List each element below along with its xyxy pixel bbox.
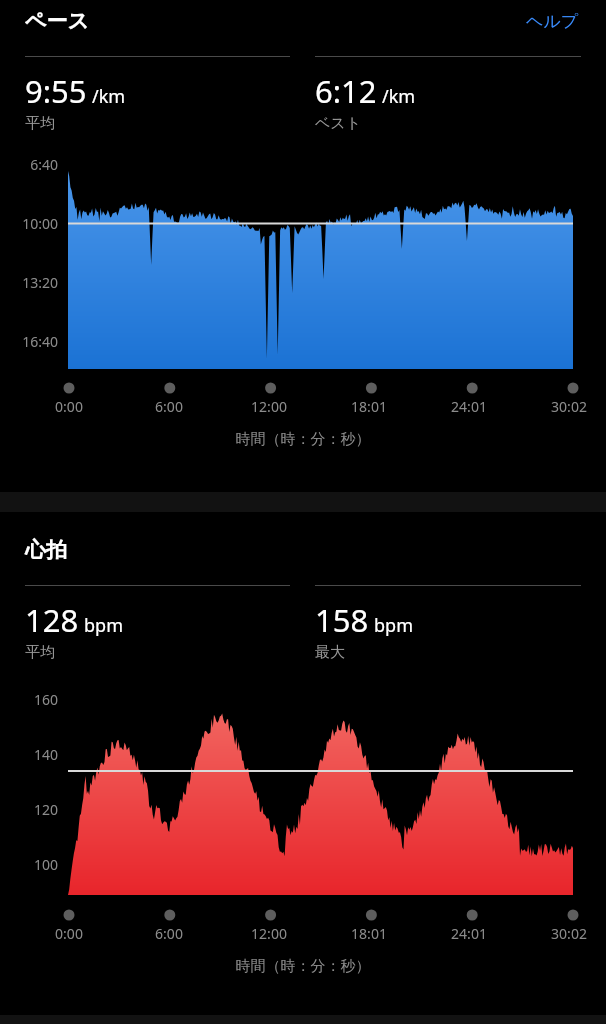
staticText: 16:40 <box>0 332 58 351</box>
staticText: 6:12 <box>315 70 377 112</box>
staticText: 140 <box>0 745 58 764</box>
staticText: 平均 <box>25 643 55 662</box>
button[interactable]: 6:12 <box>315 56 581 133</box>
staticText: bpm <box>374 613 413 638</box>
staticText: /km <box>92 84 126 109</box>
staticText: 13:20 <box>0 273 58 292</box>
staticText: 時間（時：分：秒） <box>0 430 606 449</box>
staticText: 100 <box>0 855 58 874</box>
staticText: 最大 <box>315 643 345 662</box>
staticText: 160 <box>0 690 58 709</box>
staticText: 24:01 <box>444 924 494 943</box>
staticText: 24:01 <box>444 397 494 416</box>
staticText: 158 <box>315 599 369 641</box>
staticText: 心拍 <box>25 537 67 563</box>
staticText: 18:01 <box>344 924 394 943</box>
staticText: ヘルプ <box>526 11 579 32</box>
staticText: 6:00 <box>144 397 194 416</box>
staticText: 18:01 <box>344 397 394 416</box>
staticText: 30:02 <box>544 397 594 416</box>
staticText: 6:00 <box>144 924 194 943</box>
button[interactable]: 158 <box>315 585 581 662</box>
staticText: 120 <box>0 800 58 819</box>
staticText: 9:55 <box>25 70 87 112</box>
staticText: 10:00 <box>0 214 58 233</box>
staticText: 12:00 <box>244 397 294 416</box>
staticText: 30:02 <box>544 924 594 943</box>
staticText: ベスト <box>315 114 362 133</box>
staticText: /km <box>382 84 416 109</box>
staticText: 128 <box>25 599 79 641</box>
staticText: 平均 <box>25 114 55 133</box>
staticText: 0:00 <box>44 924 94 943</box>
button[interactable]: ヘルプ <box>524 9 581 34</box>
staticText: ペース <box>25 8 89 34</box>
button[interactable]: 128 <box>25 585 290 662</box>
button[interactable]: 9:55 <box>25 56 290 133</box>
staticText: 時間（時：分：秒） <box>0 957 606 976</box>
staticText: 12:00 <box>244 924 294 943</box>
staticText: bpm <box>84 613 123 638</box>
staticText: 0:00 <box>44 397 94 416</box>
staticText: 6:40 <box>0 155 58 174</box>
